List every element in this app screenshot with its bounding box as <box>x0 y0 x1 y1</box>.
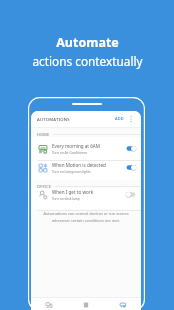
button[interactable]: When Motion is detected <box>31 159 141 176</box>
button[interactable]: Scenes <box>67 298 104 310</box>
button[interactable]: Toggle When Motion is detected <box>126 162 136 173</box>
staticText: actions contextually <box>32 53 143 69</box>
button[interactable]: When I get to work <box>31 186 141 203</box>
staticText: Turn on Livingroom lights <box>52 170 91 174</box>
staticText: OFFICE <box>37 184 52 189</box>
button[interactable]: Toggle When I get to work <box>126 189 136 200</box>
staticText: Turn on desk lamp <box>52 197 80 201</box>
staticText: Automations can control devices or run s… <box>37 211 135 223</box>
staticText: Turn on Air Conditioner <box>52 151 88 155</box>
staticText: When I get to work <box>52 189 94 195</box>
staticText: HOME <box>37 132 50 137</box>
staticText: AUTOMATIONS <box>37 117 70 123</box>
staticText: Automate <box>56 34 119 51</box>
button[interactable]: ADD <box>113 112 125 125</box>
button[interactable]: Devices <box>31 298 67 310</box>
button[interactable]: More options <box>126 112 136 125</box>
staticText: ADD <box>115 116 124 121</box>
staticText: When Motion is detected <box>52 162 106 168</box>
button[interactable]: Automations <box>104 298 141 310</box>
button[interactable]: Every morning at 6AM <box>31 140 141 157</box>
staticText: Every morning at 6AM <box>52 143 100 149</box>
button[interactable]: Toggle Every morning at 6AM <box>126 143 136 154</box>
